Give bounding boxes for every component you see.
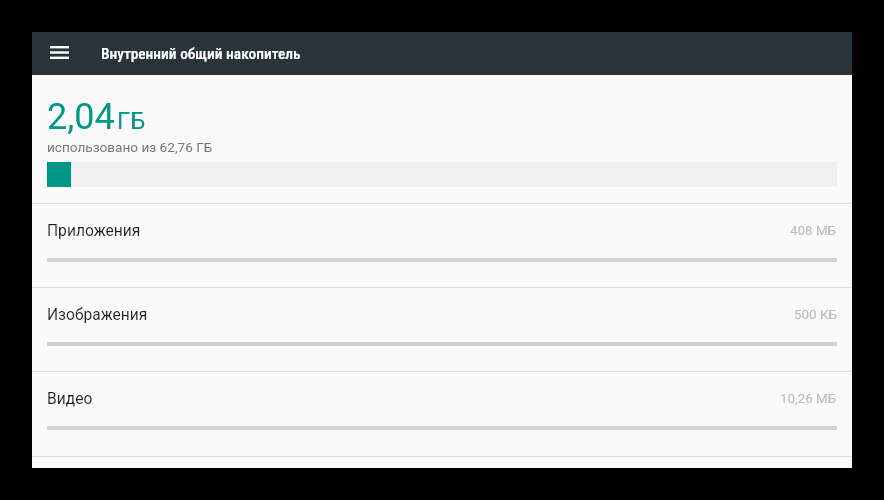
staticText: 10,26 МБ [780, 391, 837, 407]
staticText: 408 МБ [790, 223, 837, 239]
button[interactable]: Видео [32, 371, 852, 454]
staticText: 2,04 [47, 96, 115, 138]
staticText: 500 КБ [794, 307, 837, 323]
staticText: Изображения [47, 306, 148, 324]
button[interactable]: Open navigation menu [37, 32, 81, 75]
staticText: Внутренний общий накопитель [101, 45, 301, 63]
staticText: Видео [47, 390, 93, 408]
button[interactable] [32, 456, 852, 468]
staticText: Приложения [47, 222, 141, 240]
staticText: использовано из 62,76 ГБ [47, 139, 213, 155]
button[interactable]: Изображения [32, 287, 852, 370]
button[interactable]: Приложения [32, 203, 852, 286]
staticText: ГБ [117, 107, 146, 135]
